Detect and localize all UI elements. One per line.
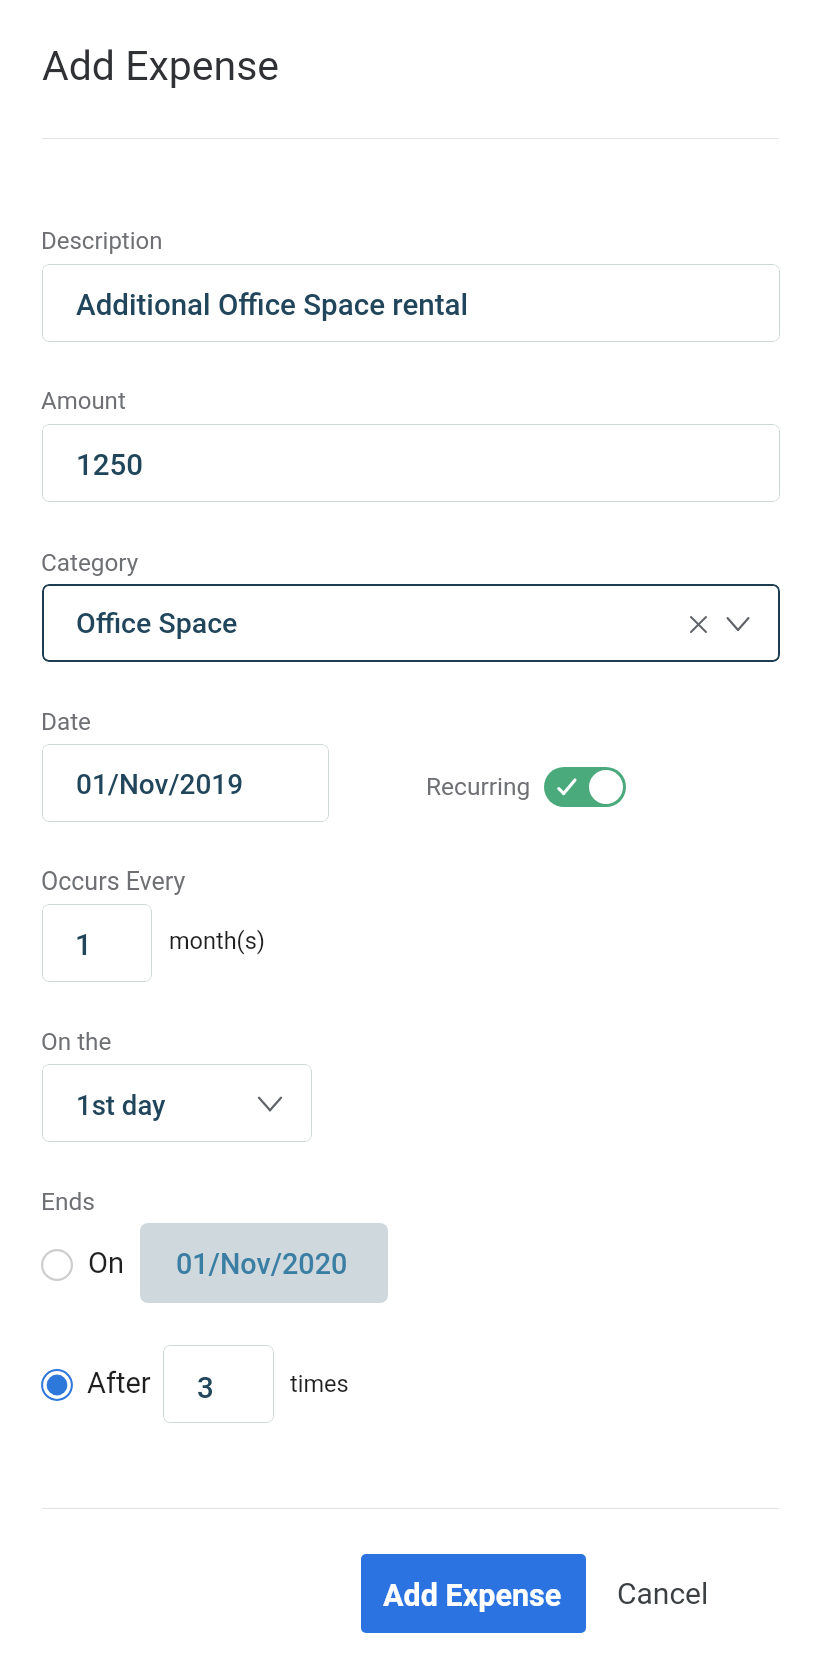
- staticText: 1: [75, 928, 92, 963]
- button[interactable]: Day of the month: [42, 1064, 312, 1142]
- button[interactable]: Amount: [42, 424, 780, 502]
- staticText: Category: [41, 548, 139, 576]
- staticText: After: [87, 1366, 151, 1400]
- button[interactable]: Clear category: [681, 607, 717, 643]
- staticText: Recurring: [426, 772, 531, 801]
- button[interactable]: Occurs every: [42, 904, 152, 982]
- staticText: Description: [41, 227, 163, 255]
- staticText: Ends: [41, 1187, 95, 1216]
- button[interactable]: Show category options: [720, 606, 756, 642]
- button[interactable]: Cancel: [600, 1558, 722, 1628]
- button[interactable]: Add Expense: [361, 1554, 586, 1633]
- staticText: 1250: [76, 448, 144, 483]
- staticText: Occurs Every: [41, 867, 186, 896]
- staticText: Date: [41, 707, 91, 735]
- staticText: 01/Nov/2019: [76, 768, 244, 801]
- staticText: 3: [197, 1371, 214, 1406]
- button[interactable]: End on a date: [41, 1249, 73, 1281]
- staticText: Add Expense: [383, 1578, 562, 1614]
- staticText: On: [88, 1246, 124, 1280]
- staticText: Additional Office Space rental: [76, 288, 468, 323]
- staticText: Office Space: [76, 607, 238, 640]
- staticText: Amount: [41, 387, 126, 415]
- staticText: Cancel: [617, 1576, 709, 1611]
- button[interactable]: Number of occurrences: [163, 1345, 274, 1423]
- staticText: On the: [41, 1027, 112, 1055]
- staticText: 01/Nov/2020: [176, 1247, 348, 1281]
- button[interactable]: Recurring, on: [544, 767, 626, 807]
- staticText: Add Expense: [42, 42, 280, 90]
- button[interactable]: Date: [42, 744, 329, 822]
- button[interactable]: Description: [42, 264, 780, 342]
- staticText: month(s): [169, 927, 265, 955]
- staticText: 1st day: [76, 1089, 166, 1121]
- button[interactable]: End after a number of times: [41, 1369, 73, 1401]
- button[interactable]: End date 01/Nov/2020: [140, 1223, 388, 1303]
- staticText: times: [290, 1370, 349, 1398]
- button[interactable]: Category: [42, 584, 780, 662]
